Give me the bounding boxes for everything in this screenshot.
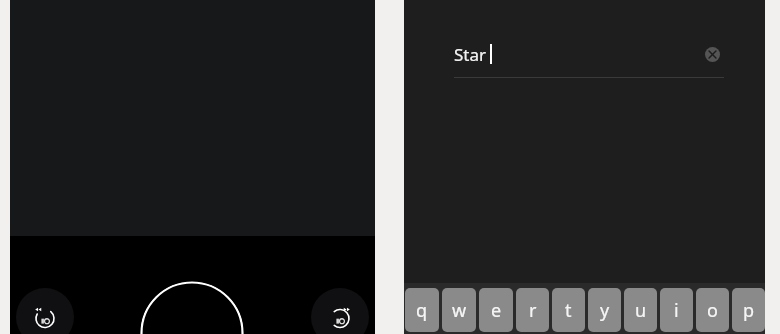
staticText: o xyxy=(707,298,718,323)
staticText: p xyxy=(743,298,755,323)
staticText: y xyxy=(600,298,610,323)
button[interactable]: w xyxy=(442,288,476,332)
button[interactable]: r xyxy=(516,288,549,332)
staticText: q xyxy=(416,298,428,323)
button[interactable]: e xyxy=(479,288,513,332)
button[interactable]: i xyxy=(660,288,693,332)
button[interactable]: u xyxy=(624,288,657,332)
button[interactable]: Forward 10 seconds xyxy=(311,288,369,334)
button[interactable]: Star xyxy=(454,34,724,82)
button[interactable]: p xyxy=(732,288,765,332)
button[interactable]: Rewind 10 seconds xyxy=(16,288,74,334)
button[interactable]: y xyxy=(588,288,621,332)
staticText: r xyxy=(529,298,537,323)
staticText: Star xyxy=(454,43,487,66)
staticText: u xyxy=(635,298,647,323)
button[interactable]: Clear search xyxy=(700,42,724,66)
staticText: t xyxy=(565,298,572,323)
button[interactable]: q xyxy=(405,288,439,332)
button[interactable]: t xyxy=(552,288,585,332)
button[interactable]: o xyxy=(696,288,729,332)
staticText: e xyxy=(491,298,502,323)
staticText: w xyxy=(452,298,467,323)
button[interactable]: MENU xyxy=(140,281,244,334)
staticText: i xyxy=(674,298,679,323)
